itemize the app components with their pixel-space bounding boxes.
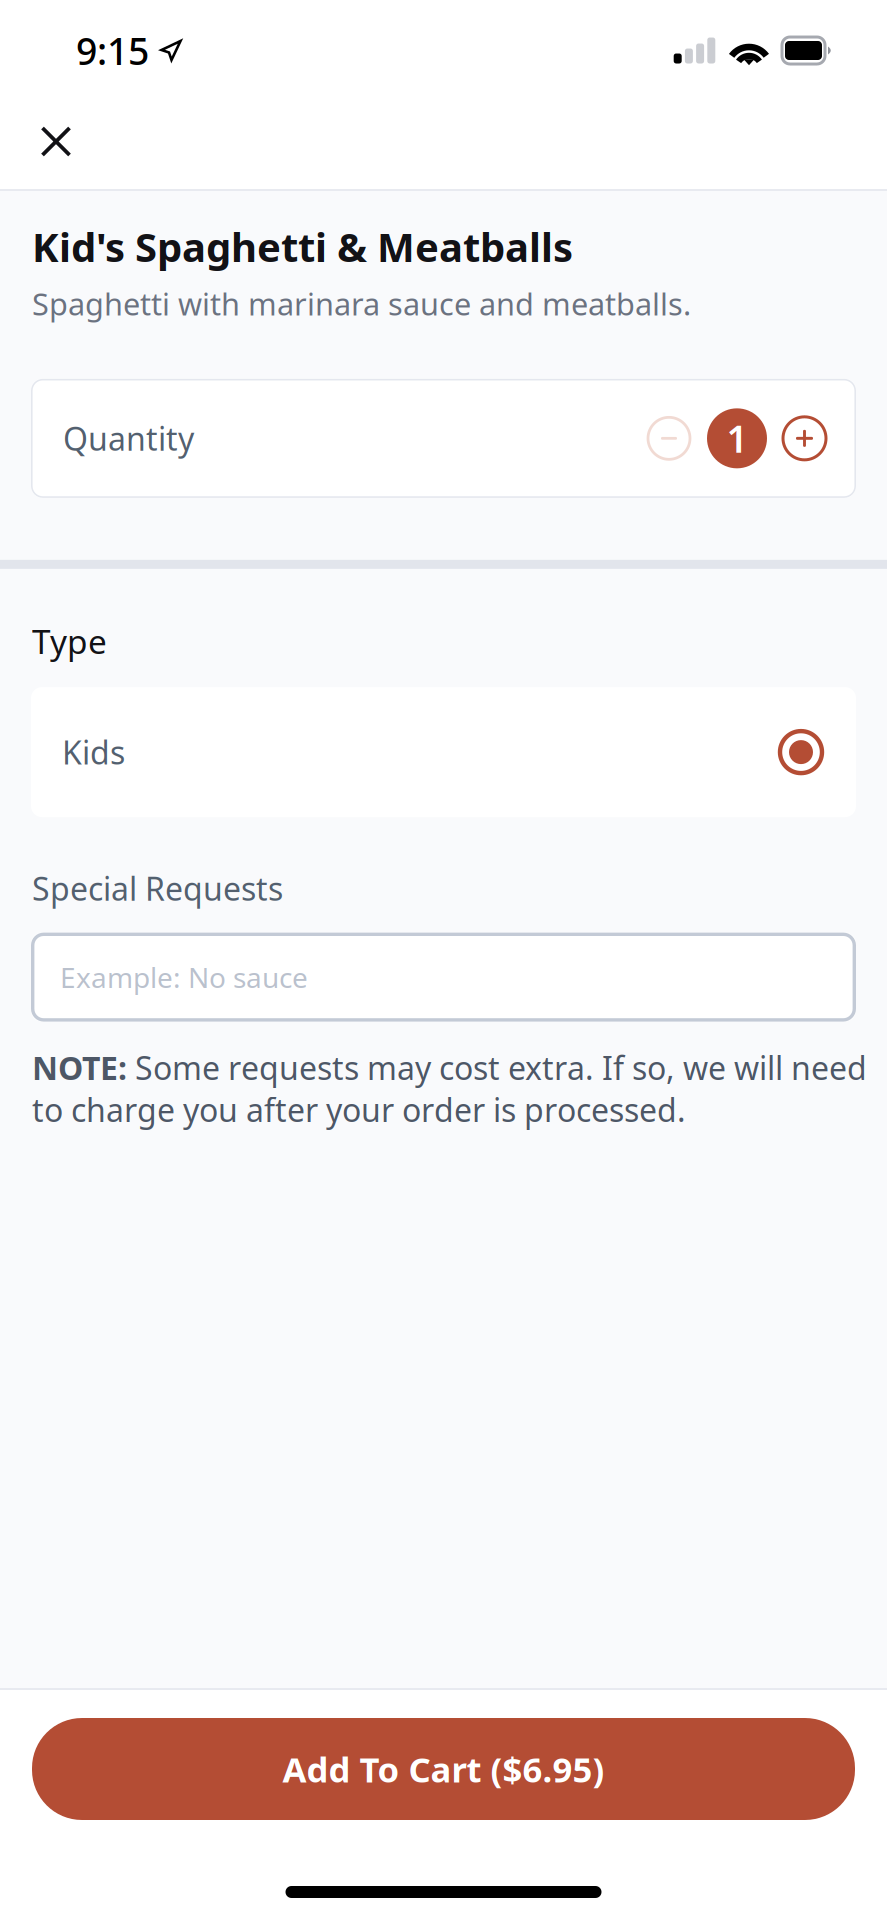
staticText: Kid's Spaghetti & Meatballs: [32, 220, 573, 273]
button[interactable]: Special requests text field: [31, 933, 856, 1022]
staticText: Kids: [62, 731, 125, 773]
staticText: Type: [32, 619, 107, 663]
button[interactable]: Increase quantity: [783, 417, 826, 460]
button[interactable]: Add To Cart ($6.95): [32, 1718, 855, 1820]
staticText: 1: [726, 414, 747, 463]
staticText: 9:15: [76, 26, 149, 75]
staticText: Quantity: [63, 417, 194, 460]
button[interactable]: Quantity 1: [707, 408, 767, 468]
staticText: Example: No sauce: [60, 958, 308, 996]
button[interactable]: Kids: [31, 687, 856, 817]
button[interactable]: Close: [18, 92, 94, 191]
staticText: to charge you after your order is proces…: [32, 1088, 686, 1131]
staticText: Special Requests: [32, 867, 283, 910]
button[interactable]: Decrease quantity: [648, 417, 690, 459]
staticText: NOTE:: [32, 1046, 127, 1089]
staticText: Spaghetti with marinara sauce and meatba…: [32, 283, 691, 324]
staticText: Add To Cart ($6.95): [282, 1746, 604, 1792]
staticText: Some requests may cost extra. If so, we …: [127, 1046, 867, 1089]
